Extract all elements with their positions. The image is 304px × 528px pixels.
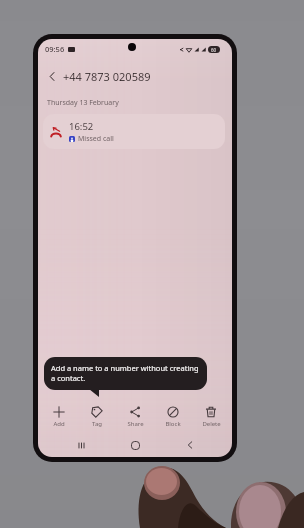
staticText: Missed call (78, 134, 114, 144)
staticText: Tag (92, 420, 102, 428)
staticText: Thursday 13 February (47, 98, 119, 108)
staticText: +44 7873 020589 (63, 69, 151, 84)
button[interactable]: Delete (194, 406, 228, 428)
staticText: 09:56 (45, 44, 65, 54)
button[interactable]: Share (118, 406, 152, 428)
staticText: Add a name to a number without creating … (51, 363, 200, 383)
staticText: 60 (211, 47, 217, 53)
button[interactable]: Back (43, 67, 61, 85)
button[interactable]: Tag (80, 406, 114, 428)
staticText: Share (127, 420, 144, 428)
staticText: Delete (202, 420, 221, 428)
staticText: Block (165, 420, 181, 428)
staticText: Add (53, 420, 65, 428)
button[interactable]: Recent apps (69, 434, 93, 456)
button[interactable]: Home (123, 434, 147, 456)
button[interactable]: Add (42, 406, 76, 428)
button[interactable]: 16:52 (43, 114, 225, 149)
staticText: 16:52 (69, 120, 94, 133)
button[interactable]: Block (156, 406, 190, 428)
button[interactable]: Back (178, 434, 202, 456)
